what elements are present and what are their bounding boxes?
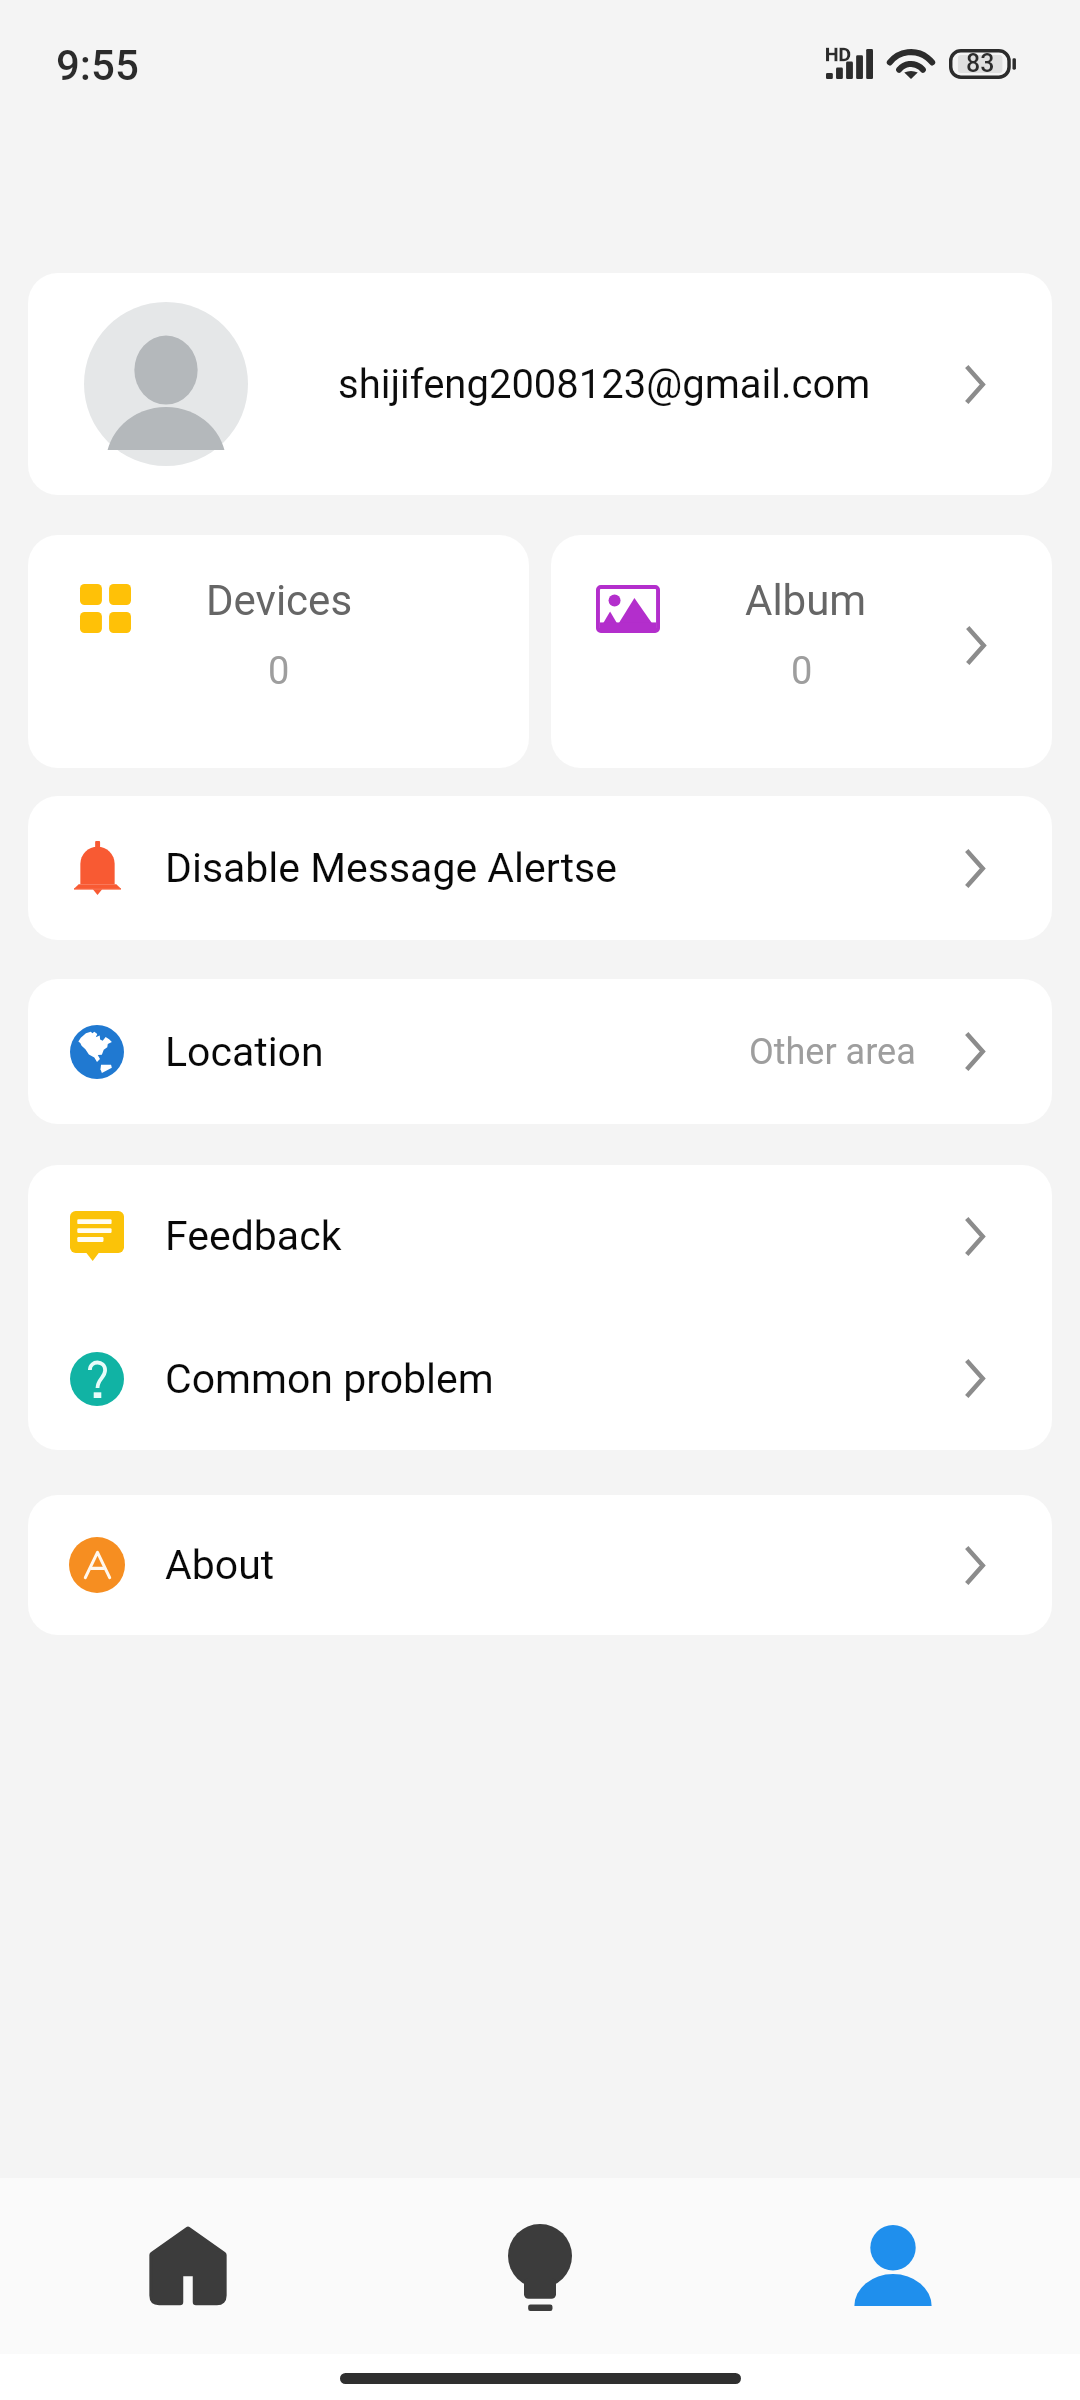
staticText: shijifeng2008123@gmail.com bbox=[338, 361, 871, 408]
button[interactable]: Tips bbox=[360, 2178, 720, 2354]
staticText: Other area bbox=[749, 1031, 916, 1073]
button[interactable]: Profile bbox=[720, 2178, 1080, 2354]
button[interactable]: About bbox=[28, 1495, 1052, 1635]
staticText: 9:55 bbox=[56, 41, 139, 90]
button[interactable]: Devices bbox=[28, 535, 529, 768]
staticText: Location bbox=[165, 1028, 324, 1076]
button[interactable]: Common problem bbox=[28, 1307, 1052, 1450]
staticText: About bbox=[165, 1541, 275, 1589]
staticText: 83 bbox=[966, 49, 995, 78]
staticText: Common problem bbox=[165, 1355, 494, 1403]
button[interactable]: Home bbox=[0, 2178, 360, 2354]
staticText: HD bbox=[825, 43, 851, 65]
staticText: Disable Message Alertse bbox=[165, 844, 618, 892]
staticText: Album bbox=[745, 576, 867, 625]
staticText: 0 bbox=[268, 649, 290, 694]
button[interactable]: Album bbox=[551, 535, 1052, 768]
button[interactable]: shijifeng2008123@gmail.com bbox=[28, 273, 1052, 495]
button[interactable]: Location bbox=[28, 979, 1052, 1124]
button[interactable]: Feedback bbox=[28, 1165, 1052, 1307]
staticText: 0 bbox=[791, 649, 813, 694]
button[interactable]: Disable Message Alertse bbox=[28, 796, 1052, 940]
staticText: Devices bbox=[206, 576, 353, 625]
staticText: Feedback bbox=[165, 1212, 342, 1260]
